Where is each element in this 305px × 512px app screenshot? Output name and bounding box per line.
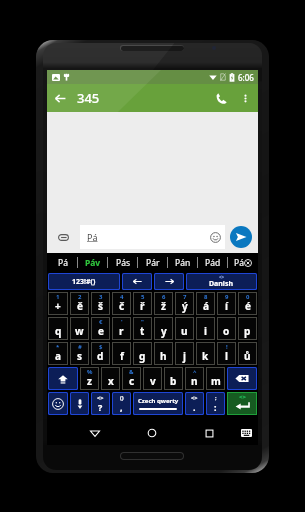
staticText: <> [239,393,246,401]
button[interactable]: 9 [218,293,235,314]
button[interactable]: Pád [198,253,228,272]
button[interactable]: " [134,318,151,339]
button[interactable]: ů [239,343,256,364]
staticText: , [120,401,123,413]
button[interactable]: Back [47,84,73,112]
button[interactable]: Send [230,226,252,248]
button[interactable]: 1 [49,293,67,314]
button[interactable]: i [197,318,214,339]
button[interactable]: q [49,318,67,339]
button[interactable]: Enter [228,393,256,414]
button[interactable]: Pá [80,225,225,249]
button[interactable]: * [49,343,67,364]
staticText: x [108,374,114,388]
button[interactable]: % [81,368,98,389]
button[interactable]: ^ [186,368,203,389]
staticText: 5 [141,293,145,301]
button[interactable]: <> [92,393,109,414]
staticText: z [87,374,92,388]
button[interactable]: € [92,318,109,339]
staticText: o [223,324,230,338]
staticText: . [193,401,196,413]
staticText: 2 [78,293,82,301]
button[interactable]: # [71,343,88,364]
button[interactable]: h [155,343,172,364]
button[interactable]: Pá [228,253,258,272]
button[interactable]: m [207,368,224,389]
button[interactable]: Emoji [49,393,67,414]
button[interactable]: u [176,318,193,339]
button[interactable]: y [155,318,172,339]
button[interactable]: g [134,343,151,364]
staticText: m [211,374,221,388]
staticText: $ [99,343,103,351]
button[interactable]: Backspace [228,368,256,389]
staticText: ; [215,394,217,401]
button[interactable]: p [239,318,256,339]
staticText: <> [97,394,104,401]
staticText: á [203,299,209,313]
button[interactable]: Czech qwerty [134,393,182,414]
staticText: 4 [120,293,124,301]
staticText: l [225,349,228,363]
button[interactable]: & [123,368,140,389]
button[interactable]: k [197,343,214,364]
button[interactable]: j [176,343,193,364]
button[interactable]: () [113,393,130,414]
staticText: š [98,299,104,313]
staticText: ř [140,299,145,313]
button[interactable]: Emoji [206,225,224,249]
button[interactable]: Voice input [71,393,88,414]
staticText: n [191,374,198,388]
staticText: r [119,324,124,338]
button[interactable]: ! [218,343,235,364]
button[interactable]: 2 [71,293,88,314]
staticText: g [139,349,146,363]
staticText: é [245,299,251,313]
staticText: Pár [146,257,160,269]
staticText: <> [191,394,198,401]
button[interactable]: ; [207,393,224,414]
button[interactable]: v [144,368,161,389]
button[interactable]: 6 [155,293,172,314]
button[interactable]: Attach [47,221,80,253]
staticText: d [97,349,104,363]
button[interactable]: <> [187,274,256,289]
staticText: p [244,324,251,338]
button[interactable]: 8 [197,293,214,314]
button[interactable]: Páv [78,253,108,272]
staticText: 123!#() [72,277,96,287]
button[interactable]: Home [141,422,163,444]
button[interactable]: Pán [168,253,198,272]
button[interactable]: Shift [49,368,77,389]
button[interactable]: Recents [198,422,220,444]
button[interactable]: 4 [113,293,130,314]
button[interactable]: x [102,368,119,389]
button[interactable]: b [165,368,182,389]
button[interactable]: Pár [138,253,168,272]
staticText: c [129,374,135,388]
button[interactable]: 5 [134,293,151,314]
button[interactable]: Change keyboard [236,423,256,443]
staticText: € [99,318,103,326]
button[interactable]: $ [92,343,109,364]
button[interactable]: Pá [47,253,78,272]
button[interactable]: Pás [108,253,138,272]
button[interactable]: Move left [123,274,151,289]
button[interactable]: Back [84,422,106,444]
staticText: w [75,324,84,338]
button[interactable]: o [218,318,235,339]
button[interactable]: ' [113,318,130,339]
button[interactable]: 7 [176,293,193,314]
button[interactable]: 123!#() [49,274,119,289]
button[interactable]: <> [186,393,203,414]
staticText: 3 [99,293,103,301]
button[interactable]: 3 [92,293,109,314]
staticText: Pá [87,231,98,243]
button[interactable]: w [71,318,88,339]
button[interactable]: Call [208,84,234,112]
button[interactable]: More options [234,84,256,112]
button[interactable]: f [113,343,130,364]
button[interactable]: Move right [155,274,183,289]
button[interactable]: 0 [239,293,256,314]
